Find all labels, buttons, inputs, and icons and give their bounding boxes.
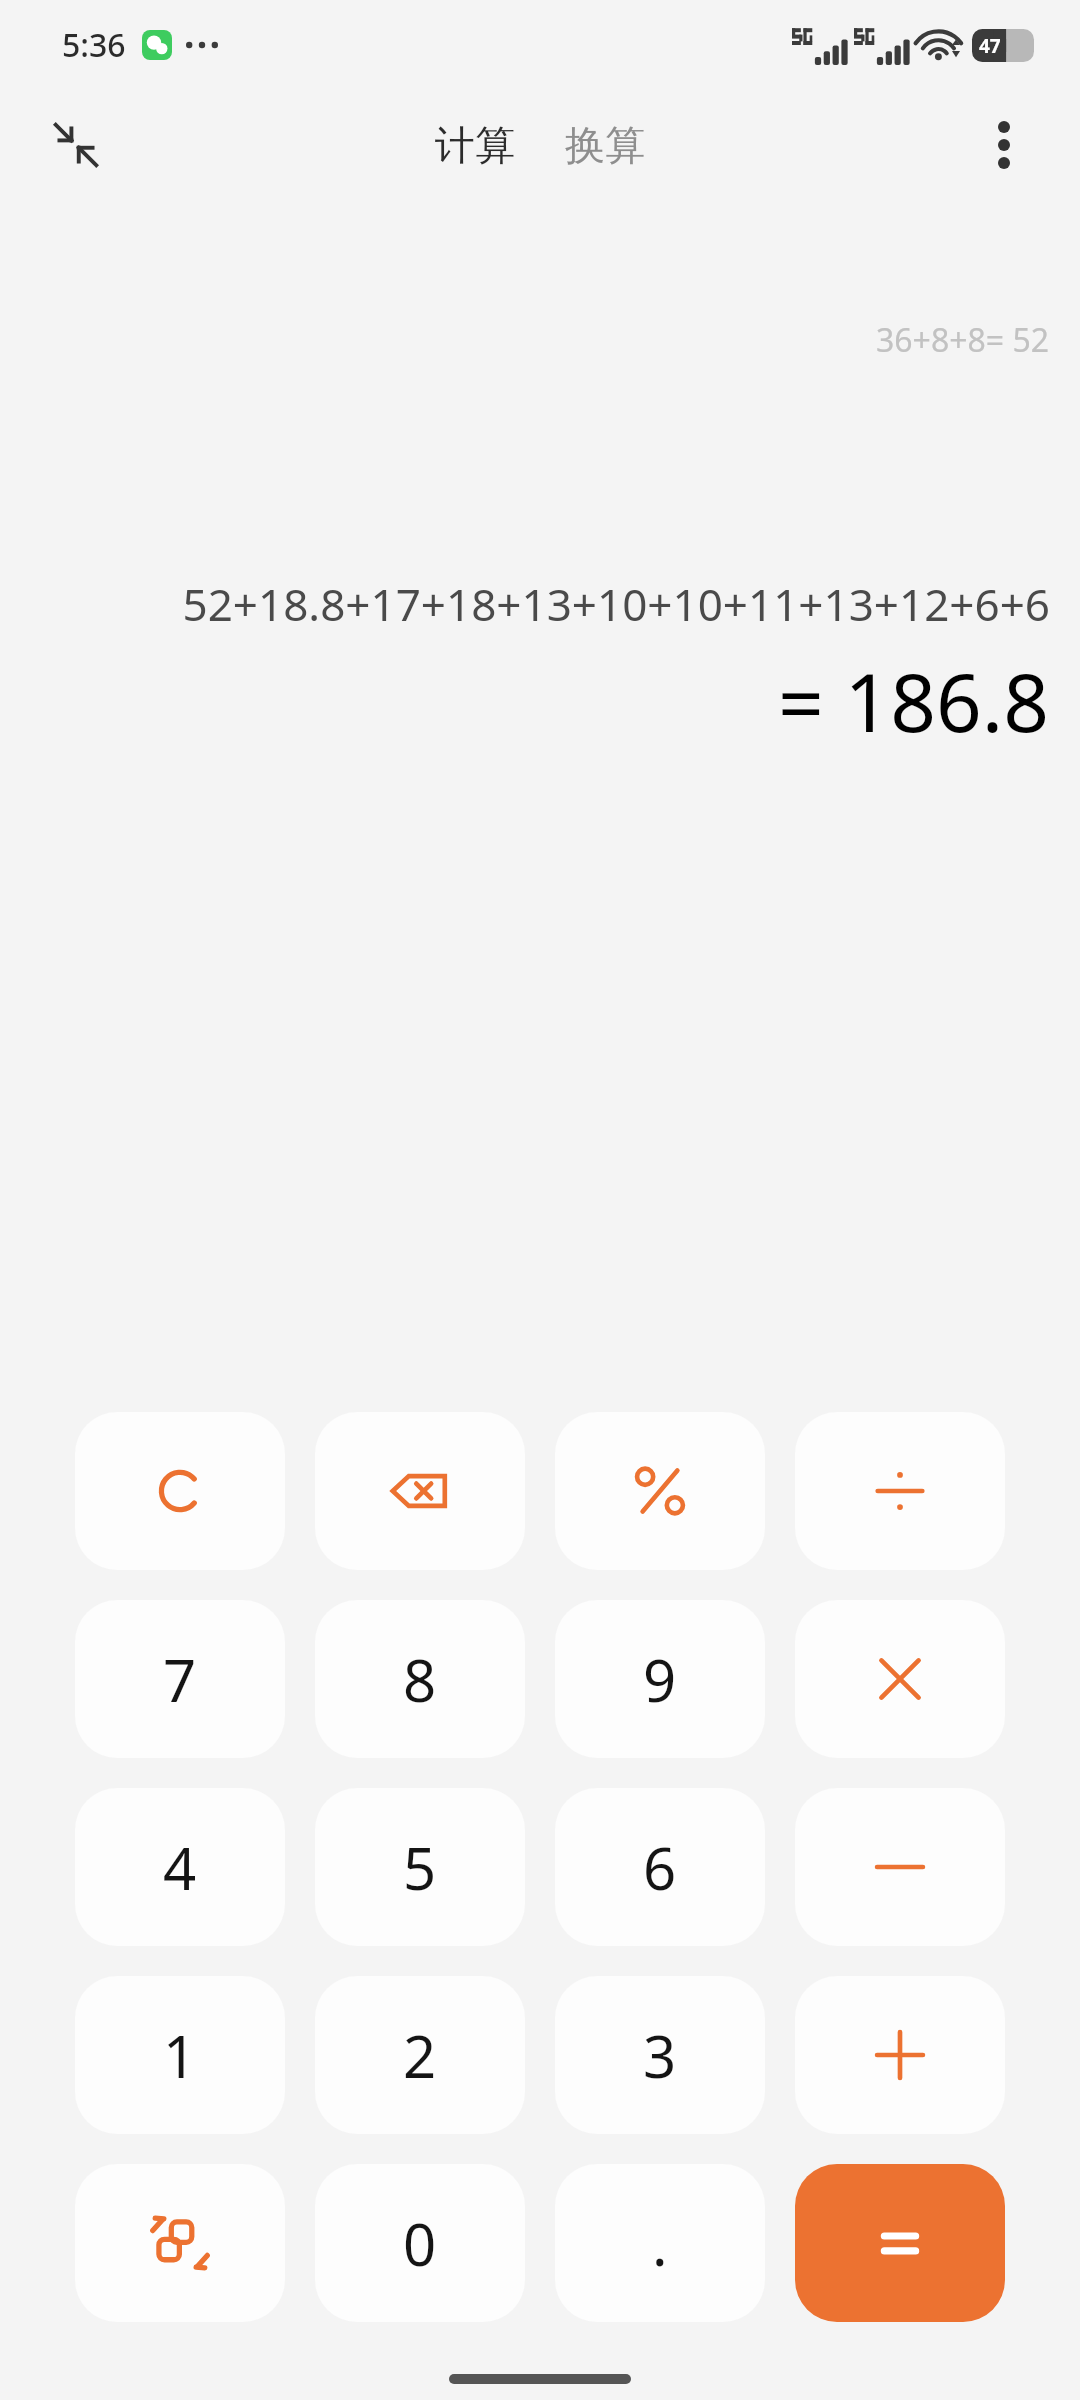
staticText: = 186.8: [778, 646, 1050, 755]
button[interactable]: More options: [968, 109, 1040, 181]
staticText: 1: [163, 2016, 197, 2095]
button[interactable]: 2: [315, 1976, 525, 2134]
staticText: 47: [979, 33, 1001, 59]
staticText: .: [652, 2204, 668, 2283]
button[interactable]: Equals: [795, 2164, 1005, 2322]
staticText: 2: [403, 2016, 437, 2095]
button[interactable]: Clear: [75, 1412, 285, 1570]
button[interactable]: 1: [75, 1976, 285, 2134]
button[interactable]: 8: [315, 1600, 525, 1758]
button[interactable]: 5: [315, 1788, 525, 1946]
button[interactable]: 4: [75, 1788, 285, 1946]
button[interactable]: Percent: [555, 1412, 765, 1570]
button[interactable]: Multiply: [795, 1600, 1005, 1758]
button[interactable]: 7: [75, 1600, 285, 1758]
staticText: 36+8+8= 52: [876, 318, 1050, 362]
staticText: 4: [163, 1828, 197, 1907]
staticText: 计算: [435, 120, 515, 170]
button[interactable]: Collapse: [40, 109, 112, 181]
button[interactable]: 计算: [421, 110, 529, 180]
staticText: 5: [403, 1828, 437, 1907]
staticText: 5:36: [62, 23, 126, 67]
staticText: 换算: [565, 120, 645, 170]
button[interactable]: 0: [315, 2164, 525, 2322]
staticText: 6: [643, 1828, 677, 1907]
button[interactable]: Unit conversion: [75, 2164, 285, 2322]
button[interactable]: 6: [555, 1788, 765, 1946]
button[interactable]: .: [555, 2164, 765, 2322]
staticText: 0: [403, 2204, 437, 2283]
button[interactable]: 9: [555, 1600, 765, 1758]
staticText: 7: [163, 1640, 197, 1719]
button[interactable]: Divide: [795, 1412, 1005, 1570]
staticText: 9: [643, 1640, 677, 1719]
button[interactable]: 3: [555, 1976, 765, 2134]
button[interactable]: Minus: [795, 1788, 1005, 1946]
button[interactable]: 换算: [551, 110, 659, 180]
staticText: 3: [643, 2016, 677, 2095]
staticText: 52+18.8+17+18+13+10+10+11+13+12+6+6: [40, 574, 1050, 634]
button[interactable]: Backspace: [315, 1412, 525, 1570]
button[interactable]: Plus: [795, 1976, 1005, 2134]
staticText: 8: [403, 1640, 437, 1719]
